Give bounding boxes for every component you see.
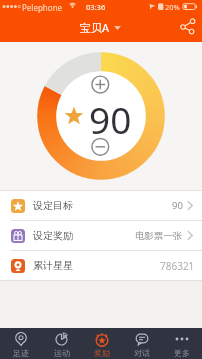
staticText: 90: [89, 94, 132, 138]
button[interactable]: 宝贝A: [80, 20, 122, 35]
staticText: 更多: [174, 348, 190, 358]
staticText: 设定奖励: [33, 229, 73, 242]
staticText: 累计星星: [33, 259, 73, 272]
staticText: 足迹: [13, 348, 29, 358]
button[interactable]: [91, 137, 110, 156]
staticText: Pelephone: [22, 2, 63, 13]
staticText: 对话: [134, 348, 150, 358]
staticText: 电影票一张: [135, 230, 183, 242]
button[interactable]: 足迹: [0, 328, 41, 359]
button[interactable]: 设定目标: [0, 191, 202, 220]
button[interactable]: 运动: [41, 328, 82, 359]
button[interactable]: 设定奖励: [0, 221, 202, 250]
button[interactable]: 90: [80, 94, 141, 138]
button[interactable]: 更多: [162, 328, 202, 359]
staticText: 03:36: [86, 2, 106, 12]
button[interactable]: [91, 75, 110, 94]
staticText: 786321: [160, 259, 195, 273]
staticText: 20%: [165, 2, 180, 12]
staticText: 宝贝A: [80, 20, 110, 35]
staticText: 奖励: [94, 348, 110, 358]
staticText: 90: [172, 199, 183, 212]
button[interactable]: [174, 14, 202, 42]
staticText: 设定目标: [33, 199, 73, 212]
staticText: 运动: [54, 348, 70, 358]
button[interactable]: 对话: [122, 328, 162, 359]
button[interactable]: 奖励: [82, 328, 122, 359]
button[interactable]: 累计星星: [0, 251, 202, 280]
